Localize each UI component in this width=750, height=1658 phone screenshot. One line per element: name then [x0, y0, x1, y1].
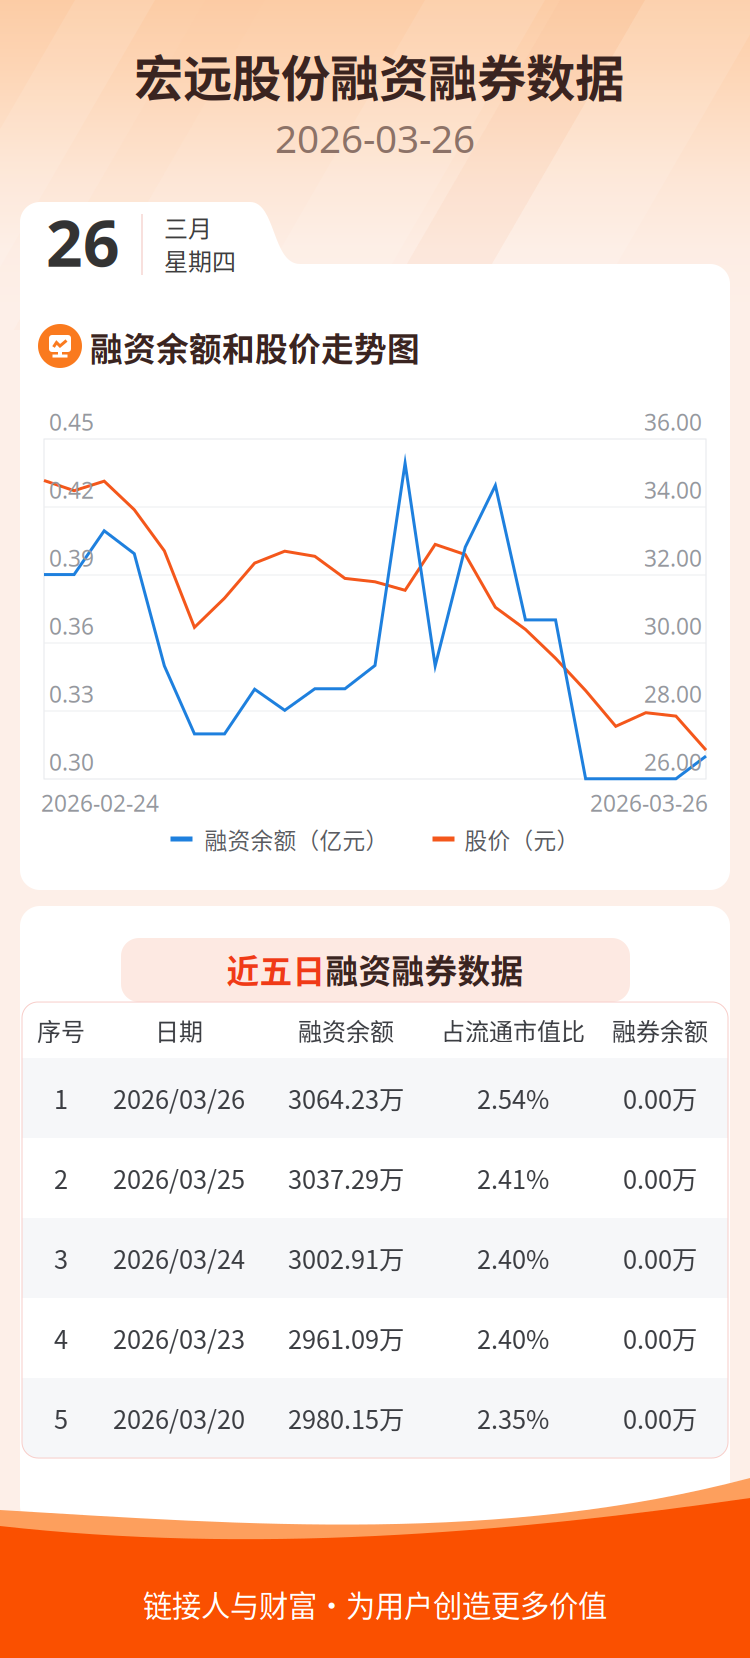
staticText: 28.00	[644, 679, 702, 709]
staticText: 2961.09万	[288, 1320, 404, 1356]
staticText: 近五日	[226, 945, 325, 993]
staticText: 日期	[155, 1013, 203, 1047]
staticText: 1	[54, 1080, 68, 1116]
staticText: 4	[54, 1320, 68, 1356]
staticText: 26.00	[644, 747, 702, 777]
staticText: 序号	[37, 1013, 85, 1047]
staticText: 26	[46, 198, 120, 286]
staticText: 2.40%	[477, 1240, 549, 1276]
staticText: 30.00	[644, 611, 702, 641]
staticText: 2026/03/26	[113, 1080, 245, 1116]
staticText: 2026/03/23	[113, 1320, 245, 1356]
staticText: 0.30	[49, 747, 94, 777]
staticText: 0.42	[49, 475, 94, 505]
staticText: 0.00万	[623, 1160, 697, 1196]
staticText: 2026-02-24	[41, 788, 159, 818]
staticText: 0.36	[49, 611, 94, 641]
staticText: 2.40%	[477, 1320, 549, 1356]
staticText: 3002.91万	[288, 1240, 404, 1276]
staticText: 融资余额（亿元）	[204, 823, 388, 855]
staticText: 32.00	[644, 543, 702, 573]
staticText: 2026-03-26	[590, 788, 708, 818]
staticText: 0.39	[49, 543, 94, 573]
staticText: 2.41%	[477, 1160, 549, 1196]
staticText: 2026-03-26	[275, 112, 475, 164]
staticText: 0.33	[49, 679, 94, 709]
staticText: 2	[54, 1160, 68, 1196]
staticText: 占流通市值比	[441, 1013, 585, 1047]
staticText: 5	[54, 1400, 68, 1436]
staticText: 股价（元）	[464, 823, 579, 855]
staticText: 2980.15万	[288, 1400, 404, 1436]
staticText: 3	[54, 1240, 68, 1276]
staticText: 融券余额	[612, 1013, 708, 1047]
staticText: 融资余额和股价走势图	[90, 323, 420, 371]
staticText: 链接人与财富·为用户创造更多价值	[143, 1583, 607, 1625]
staticText: 3064.23万	[288, 1080, 404, 1116]
staticText: 36.00	[644, 407, 702, 437]
staticText: 2.35%	[477, 1400, 549, 1436]
staticText: 34.00	[644, 475, 702, 505]
staticText: 0.00万	[623, 1240, 697, 1276]
staticText: 星期四	[164, 243, 236, 277]
staticText: 0.00万	[623, 1320, 697, 1356]
staticText: 0.00万	[623, 1080, 697, 1116]
staticText: 宏远股份融资融券数据	[134, 39, 624, 111]
staticText: 融资融券数据	[325, 945, 523, 993]
staticText: 0.00万	[623, 1400, 697, 1436]
staticText: 2026/03/25	[113, 1160, 245, 1196]
staticText: 3037.29万	[288, 1160, 404, 1196]
staticText: 三月	[164, 210, 212, 244]
staticText: 融资余额	[298, 1013, 394, 1047]
staticText: 2026/03/24	[113, 1240, 245, 1276]
staticText: 2.54%	[477, 1080, 549, 1116]
staticText: 0.45	[49, 407, 94, 437]
staticText: 2026/03/20	[113, 1400, 245, 1436]
